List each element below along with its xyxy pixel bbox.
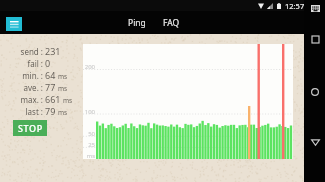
staticText: 100 xyxy=(84,108,95,115)
staticText: STOP xyxy=(18,122,43,134)
staticText: 77 xyxy=(45,81,56,93)
staticText: min. : xyxy=(22,70,43,81)
staticText: last : xyxy=(25,106,43,117)
staticText: FAQ xyxy=(163,17,180,29)
button[interactable]: Keyboard xyxy=(310,4,320,12)
button[interactable]: Home xyxy=(308,85,322,99)
staticText: ms xyxy=(58,72,68,81)
staticText: ave. : xyxy=(23,82,43,93)
staticText: 0 xyxy=(45,57,51,69)
staticText: 661 xyxy=(45,93,61,105)
staticText: fail : xyxy=(27,58,43,69)
staticText: send : xyxy=(20,46,43,57)
staticText: 231 xyxy=(45,45,61,57)
staticText: 64 xyxy=(45,69,56,81)
staticText: 25 xyxy=(88,141,95,148)
staticText: 50 xyxy=(88,130,95,137)
staticText: 79 xyxy=(45,105,56,117)
staticText: 200 xyxy=(84,63,95,70)
button[interactable]: STOP xyxy=(13,120,47,136)
staticText: ms xyxy=(63,96,73,105)
staticText: Ping xyxy=(128,17,146,29)
button[interactable]: Navigation menu xyxy=(6,17,22,31)
staticText: max. : xyxy=(20,94,43,105)
staticText: ms xyxy=(86,152,95,159)
staticText: 12:57 xyxy=(285,1,305,11)
button[interactable]: Ping xyxy=(123,13,151,33)
button[interactable]: FAQ xyxy=(158,13,185,33)
button[interactable]: Back xyxy=(308,135,322,149)
staticText: ms xyxy=(58,108,68,117)
staticText: ms xyxy=(58,84,68,93)
button[interactable]: Recent apps xyxy=(308,32,322,46)
